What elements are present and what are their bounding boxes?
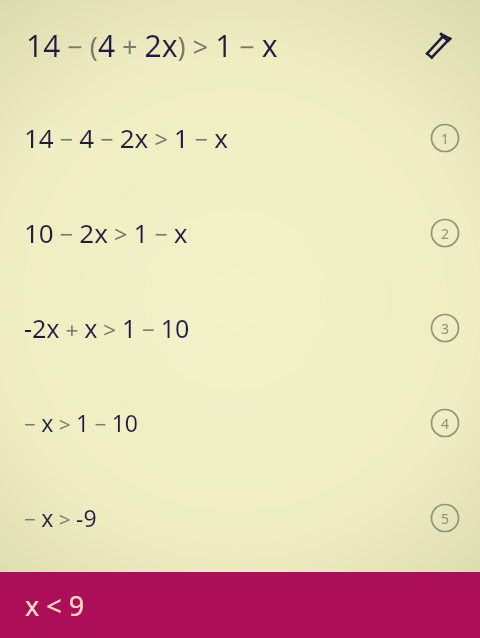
staticText: 5 — [441, 509, 450, 528]
staticText: -2x + x > 1 − 10 — [24, 311, 430, 345]
staticText: 14 − 4 − 2x > 1 − x — [24, 120, 430, 155]
button[interactable]: − x > 1 − 10 — [0, 375, 480, 470]
staticText: 14 − (4 + 2x) > 1 − x — [26, 25, 416, 66]
staticText: 10 − 2x > 1 − x — [24, 215, 430, 250]
button[interactable]: 10 − 2x > 1 − x — [0, 185, 480, 280]
button[interactable]: Edit equation — [416, 23, 460, 67]
button[interactable]: 14 − 4 − 2x > 1 − x — [0, 90, 480, 185]
button[interactable]: − x > -9 — [0, 470, 480, 565]
staticText: 1 — [441, 129, 450, 148]
staticText: 4 — [441, 414, 450, 433]
button[interactable]: -2x + x > 1 − 10 — [0, 280, 480, 375]
staticText: 2 — [441, 224, 450, 243]
staticText: x < 9 — [25, 587, 85, 624]
staticText: − x > 1 − 10 — [24, 407, 430, 438]
staticText: − x > -9 — [24, 502, 430, 533]
button[interactable]: x < 9 — [0, 572, 480, 638]
staticText: 3 — [441, 319, 450, 338]
